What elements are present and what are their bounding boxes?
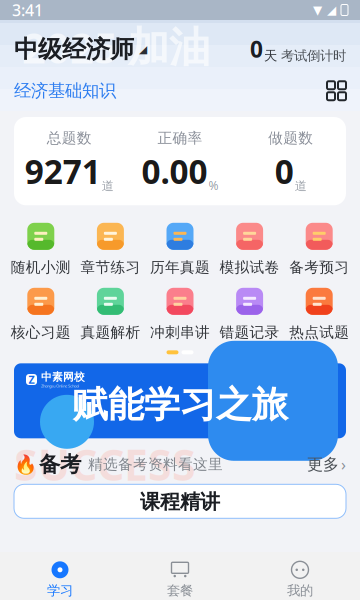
staticText: Zhongsu Online School (41, 383, 79, 389)
staticText: ◢ (327, 3, 336, 17)
button[interactable]: 课程精讲 (0, 484, 360, 518)
button[interactable]: 备考预习 (284, 221, 354, 276)
button[interactable]: 热点试题 (284, 286, 354, 341)
staticText: 道 (295, 178, 307, 193)
staticText: 天 (264, 48, 277, 64)
button[interactable]: 模拟试卷 (215, 221, 284, 276)
button[interactable]: 套餐 (120, 553, 240, 599)
button[interactable]: 随机小测 (6, 221, 76, 276)
staticText: 学习 (47, 582, 73, 599)
button[interactable]: 更多 (307, 454, 346, 475)
staticText: › (341, 454, 346, 475)
staticText: 9271 (25, 149, 101, 193)
staticText: 备考 (39, 451, 81, 477)
staticText: 核心习题 (11, 323, 71, 341)
staticText: 🔥 (14, 454, 37, 475)
staticText: 冲刺串讲 (150, 323, 210, 341)
staticText: 更多 (307, 454, 339, 474)
staticText: 备考预习 (289, 258, 349, 276)
button[interactable]: 真题解析 (76, 286, 145, 341)
staticText: ▼ (313, 3, 322, 17)
staticText: 0 (275, 149, 294, 193)
staticText: 精选备考资料看这里 (88, 455, 223, 473)
staticText: 正确率 (157, 129, 202, 147)
staticText: 总题数 (47, 129, 92, 147)
staticText: 考试倒计时 (281, 48, 346, 64)
staticText: 经济基础知识 (14, 80, 116, 101)
staticText: 我的 (287, 582, 313, 599)
staticText: 0 (250, 34, 263, 64)
staticText: 3:41 (12, 0, 43, 21)
staticText: SUCCESS (14, 436, 196, 493)
staticText: 2025 (22, 20, 118, 75)
staticText: 章节练习 (80, 258, 140, 276)
button[interactable]: 赋能学习之旅 (0, 363, 360, 438)
staticText: 赋能学习之旅 (72, 383, 288, 427)
button[interactable]: 冲刺串讲 (145, 286, 215, 341)
staticText: 模拟试卷 (220, 258, 280, 276)
staticText: 0.00 (141, 149, 207, 193)
staticText: 加油 (128, 22, 210, 73)
button[interactable]: All tools (327, 81, 346, 100)
button[interactable]: 核心习题 (6, 286, 76, 341)
staticText: 做题数 (268, 129, 313, 147)
staticText: 热点试题 (289, 323, 349, 341)
button[interactable]: 0 (250, 34, 346, 64)
button[interactable]: 学习 (0, 553, 120, 599)
button[interactable]: 我的 (240, 553, 360, 599)
staticText: 套餐 (167, 582, 193, 599)
button[interactable]: 章节练习 (76, 221, 145, 276)
staticText: Z (28, 372, 34, 387)
button[interactable]: 历年真题 (145, 221, 215, 276)
staticText: 真题解析 (80, 323, 140, 341)
staticText: 中素网校 (41, 370, 85, 383)
staticText: ◢ (139, 43, 147, 55)
staticText: 道 (102, 178, 114, 193)
staticText: 历年真题 (150, 258, 210, 276)
button[interactable]: 中级经济师 (14, 35, 147, 64)
staticText: 随机小测 (11, 258, 71, 276)
staticText: 错题记录 (220, 323, 280, 341)
staticText: % (208, 177, 218, 193)
button[interactable]: 经济基础知识 (14, 80, 116, 101)
staticText: 课程精讲 (140, 489, 220, 514)
staticText: 中级经济师 (14, 35, 134, 64)
button[interactable]: 错题记录 (215, 286, 284, 341)
